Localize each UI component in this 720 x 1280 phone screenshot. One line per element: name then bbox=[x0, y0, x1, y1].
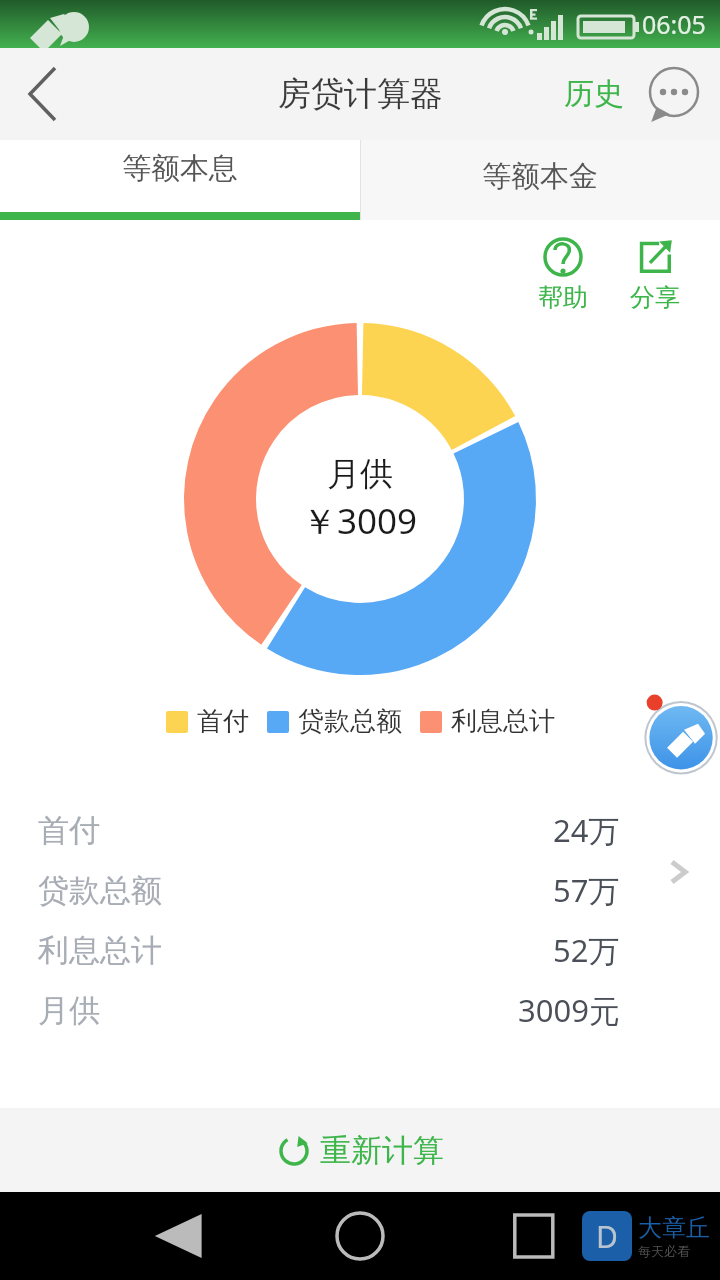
button[interactable]: 重新计算 bbox=[0, 1108, 720, 1192]
button[interactable]: More options bbox=[646, 66, 702, 122]
staticText: 历史 bbox=[564, 75, 624, 113]
staticText: 首付 bbox=[197, 705, 249, 738]
staticText: 月供 bbox=[327, 453, 393, 495]
staticText: 3009元 bbox=[518, 989, 620, 1031]
button[interactable]: 首付 bbox=[0, 800, 720, 860]
staticText: 利息总计 bbox=[451, 705, 555, 738]
staticText: D bbox=[596, 1216, 618, 1257]
button[interactable]: 利息总计 bbox=[0, 920, 720, 980]
button[interactable]: 等额本金 bbox=[360, 140, 720, 220]
button[interactable]: 等额本息 bbox=[0, 140, 360, 220]
staticText: 57万 bbox=[553, 869, 620, 911]
staticText: 06:05 bbox=[642, 7, 706, 41]
staticText: 帮助 bbox=[538, 282, 588, 313]
staticText: 分享 bbox=[630, 282, 680, 313]
staticText: 等额本金 bbox=[482, 158, 598, 195]
staticText: 首付 bbox=[38, 811, 100, 850]
staticText: 每天必看 bbox=[638, 1243, 690, 1259]
staticText: 贷款总额 bbox=[298, 705, 402, 738]
button[interactable]: Clean bbox=[630, 692, 718, 780]
button[interactable]: Back bbox=[0, 48, 86, 140]
staticText: 24万 bbox=[553, 809, 620, 851]
staticText: 月供 bbox=[38, 991, 100, 1030]
button[interactable]: 分享 bbox=[620, 236, 690, 313]
staticText: 贷款总额 bbox=[38, 871, 162, 910]
button[interactable]: 历史 bbox=[556, 65, 632, 123]
staticText: 房贷计算器 bbox=[278, 73, 443, 115]
staticText: ￥3009 bbox=[302, 497, 418, 545]
staticText: 等额本息 bbox=[122, 150, 238, 187]
staticText: 利息总计 bbox=[38, 931, 162, 970]
button[interactable]: 月供 bbox=[0, 980, 720, 1040]
staticText: 52万 bbox=[553, 929, 620, 971]
button[interactable]: 贷款总额 bbox=[0, 860, 720, 920]
staticText: 大章丘 bbox=[638, 1213, 710, 1243]
button[interactable]: 帮助 bbox=[528, 236, 598, 313]
staticText: 重新计算 bbox=[320, 1131, 444, 1170]
